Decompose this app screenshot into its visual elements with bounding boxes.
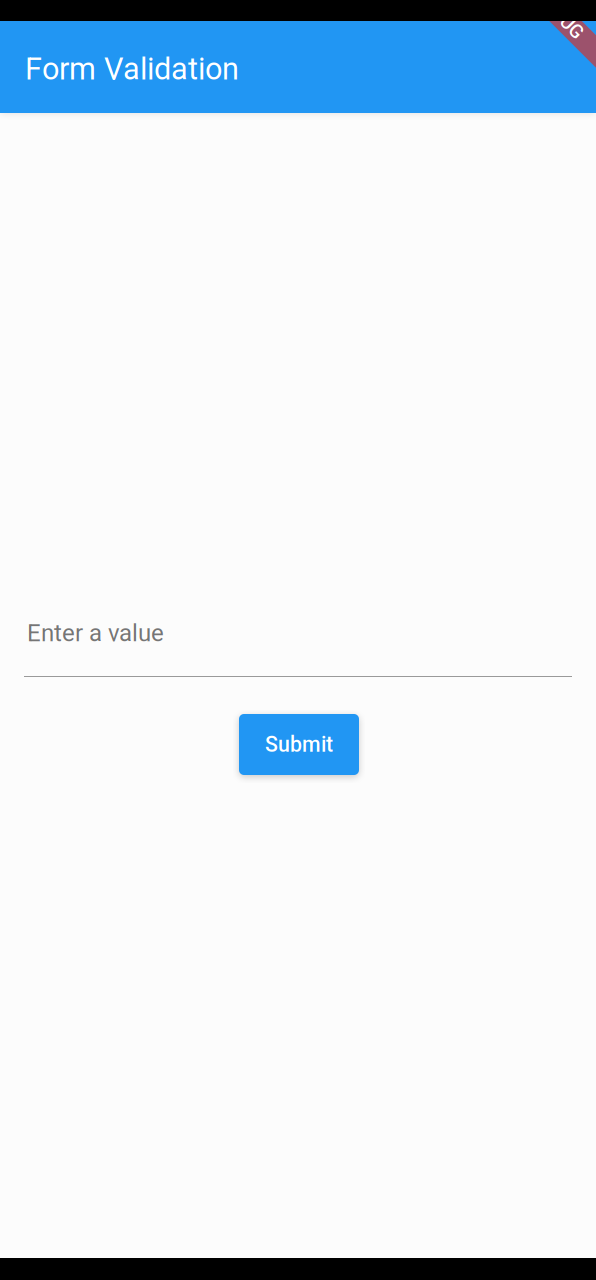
staticText: Enter a value xyxy=(27,619,164,647)
staticText: Form Validation xyxy=(25,51,239,87)
button[interactable]: Submit xyxy=(239,714,359,775)
button[interactable]: Enter a value xyxy=(24,615,572,677)
staticText: DEBUG xyxy=(528,7,588,28)
staticText: Submit xyxy=(265,732,333,757)
